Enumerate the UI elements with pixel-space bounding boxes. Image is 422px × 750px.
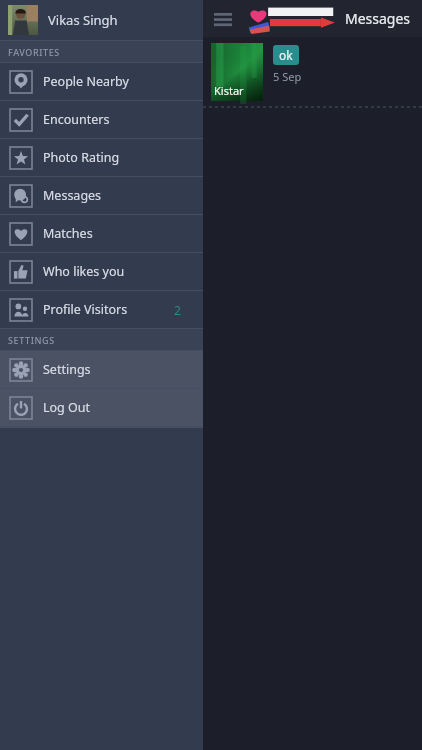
button[interactable]: Profile Visitors — [0, 291, 203, 328]
staticText: SETTINGS — [8, 334, 55, 346]
button[interactable]: Open navigation drawer — [210, 6, 236, 32]
button[interactable]: Messages — [0, 177, 203, 214]
staticText: Log Out — [43, 399, 193, 416]
staticText: Photo Rating — [43, 149, 193, 166]
staticText: Encounters — [43, 111, 193, 128]
button[interactable]: People Nearby — [0, 63, 203, 100]
staticText: ok — [279, 47, 293, 63]
button[interactable]: Matches — [0, 215, 203, 252]
button[interactable]: Vikas Singh — [0, 0, 203, 40]
staticText: Messages — [345, 9, 411, 28]
staticText: Who likes you — [43, 263, 193, 280]
button[interactable]: Kistar — [203, 37, 422, 107]
button[interactable]: Photo Rating — [0, 139, 203, 176]
staticText: 2 — [174, 302, 181, 318]
button[interactable]: Encounters — [0, 101, 203, 138]
staticText: Settings — [43, 361, 193, 378]
staticText: People Nearby — [43, 73, 193, 90]
staticText: Profile Visitors — [43, 301, 174, 318]
button[interactable]: Log Out — [0, 389, 203, 426]
staticText: Vikas Singh — [48, 11, 118, 29]
button[interactable]: Who likes you — [0, 253, 203, 290]
staticText: FAVORITES — [8, 46, 60, 58]
staticText: 5 Sep — [273, 69, 302, 84]
staticText: Kistar — [214, 83, 244, 98]
staticText: Messages — [43, 187, 193, 204]
button[interactable]: Settings — [0, 351, 203, 388]
staticText: Matches — [43, 225, 193, 242]
